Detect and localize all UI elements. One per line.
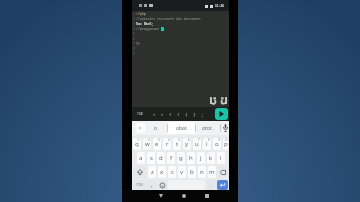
button[interactable]: g — [177, 152, 185, 164]
button[interactable] — [215, 108, 228, 120]
button[interactable] — [133, 166, 146, 178]
button[interactable] — [158, 180, 166, 190]
button[interactable]: x — [158, 166, 166, 178]
staticText: z — [151, 168, 154, 176]
button[interactable]: e — [153, 138, 161, 150]
staticText: 3 — [158, 138, 160, 142]
button[interactable]: w — [143, 138, 151, 150]
staticText: TAB — [137, 112, 143, 116]
staticText: s — [150, 154, 153, 162]
button[interactable]: c — [168, 166, 176, 178]
button[interactable]: l — [217, 152, 225, 164]
button[interactable]: s — [147, 152, 155, 164]
staticText: t — [176, 140, 179, 148]
button[interactable]: > — [136, 123, 145, 133]
button[interactable]: obat — [168, 122, 195, 134]
staticText: <?php — [136, 12, 146, 16]
staticText: ; — [201, 112, 204, 117]
staticText: g — [179, 154, 183, 162]
button[interactable]: i — [203, 138, 211, 150]
staticText: > — [161, 112, 164, 117]
staticText: > — [139, 125, 142, 131]
staticText: 9 — [133, 52, 135, 56]
button[interactable]: ; — [198, 107, 206, 121]
button[interactable]: . — [207, 180, 215, 190]
button[interactable] — [217, 180, 228, 190]
button[interactable]: h — [187, 152, 195, 164]
button[interactable]: ?123 — [133, 180, 146, 190]
button[interactable]: p — [223, 138, 228, 150]
button[interactable] — [178, 190, 190, 202]
staticText: ( — [169, 112, 172, 117]
staticText: 9 — [218, 138, 220, 142]
button[interactable]: m — [208, 166, 216, 178]
button[interactable]: j — [197, 152, 205, 164]
staticText: ?123 — [136, 183, 143, 187]
staticText: r — [166, 140, 169, 148]
staticText: 2 — [133, 17, 135, 21]
staticText: 8 — [208, 138, 210, 142]
staticText: m — [209, 168, 215, 176]
staticText: l — [220, 154, 222, 162]
staticText: d — [159, 154, 163, 162]
button[interactable]: o — [213, 138, 221, 150]
button[interactable]: d — [157, 152, 165, 164]
staticText: 8 — [133, 47, 135, 51]
staticText: 11:26 — [215, 4, 225, 8]
button[interactable]: v — [178, 166, 186, 178]
staticText: 6 — [188, 138, 190, 142]
button[interactable]: f — [167, 152, 175, 164]
staticText: 5 — [178, 138, 180, 142]
button[interactable]: u — [193, 138, 201, 150]
button[interactable]: TAB — [137, 112, 143, 116]
button[interactable] — [221, 121, 229, 135]
staticText: n — [200, 168, 204, 176]
staticText: u — [195, 140, 199, 148]
staticText: v — [180, 168, 184, 176]
staticText: 4 — [133, 27, 135, 31]
staticText: b — [190, 168, 194, 176]
button[interactable]: a — [137, 152, 145, 164]
staticText: { — [185, 112, 188, 117]
staticText: ?> — [136, 42, 140, 46]
staticText: i — [206, 140, 208, 148]
button[interactable]: k — [207, 152, 215, 164]
button[interactable]: ( — [166, 107, 174, 121]
button[interactable] — [201, 190, 213, 202]
button[interactable]: o — [145, 121, 167, 135]
button[interactable]: otot. — [196, 121, 220, 135]
staticText: x — [160, 168, 164, 176]
staticText: c — [171, 168, 174, 176]
button[interactable]: ) — [174, 107, 182, 121]
staticText: j — [200, 154, 202, 162]
staticText: $a= $b=5; — [136, 22, 154, 26]
staticText: 6 — [133, 37, 135, 41]
button[interactable]: b — [188, 166, 196, 178]
staticText: 1 — [133, 12, 135, 16]
button[interactable]: q — [133, 138, 141, 150]
staticText: q — [135, 140, 139, 148]
button[interactable]: t — [173, 138, 181, 150]
staticText: 0 — [225, 138, 227, 142]
button[interactable] — [218, 166, 228, 178]
staticText: //penggunaan — [136, 27, 161, 31]
staticText: 1 — [138, 138, 140, 142]
staticText: e — [155, 140, 159, 148]
staticText: 5 — [133, 32, 135, 36]
button[interactable]: > — [158, 107, 166, 121]
button[interactable]: n — [198, 166, 206, 178]
button[interactable]: r — [163, 138, 171, 150]
button[interactable]: z — [148, 166, 156, 178]
button[interactable]: { — [182, 107, 190, 121]
button[interactable]: , — [148, 180, 156, 190]
staticText: , — [151, 181, 153, 189]
button[interactable]: } — [190, 107, 198, 121]
button[interactable] — [155, 190, 167, 202]
button[interactable]: y — [183, 138, 191, 150]
button[interactable]: < — [150, 107, 158, 121]
staticText: y — [185, 140, 189, 148]
staticText: otot. — [202, 125, 214, 132]
staticText: ) — [177, 112, 180, 117]
staticText: p — [224, 140, 228, 148]
